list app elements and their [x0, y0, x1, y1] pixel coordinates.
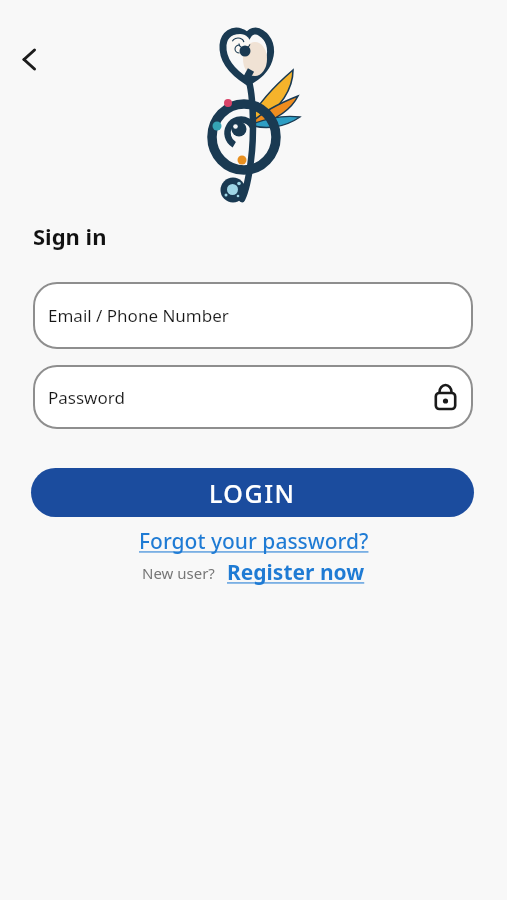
staticText: Email / Phone Number: [48, 304, 229, 327]
button[interactable]: [10, 44, 46, 80]
staticText: LOGIN: [209, 476, 296, 510]
button[interactable]: LOGIN: [31, 468, 474, 517]
button[interactable]: Forgot your password?: [139, 527, 369, 556]
staticText: Password: [48, 386, 125, 409]
button[interactable]: Password: [33, 365, 473, 429]
staticText: New user?: [142, 563, 215, 583]
staticText: Sign in: [33, 221, 107, 251]
button[interactable]: Email / Phone Number: [33, 282, 473, 349]
button[interactable]: Register now: [227, 558, 365, 587]
